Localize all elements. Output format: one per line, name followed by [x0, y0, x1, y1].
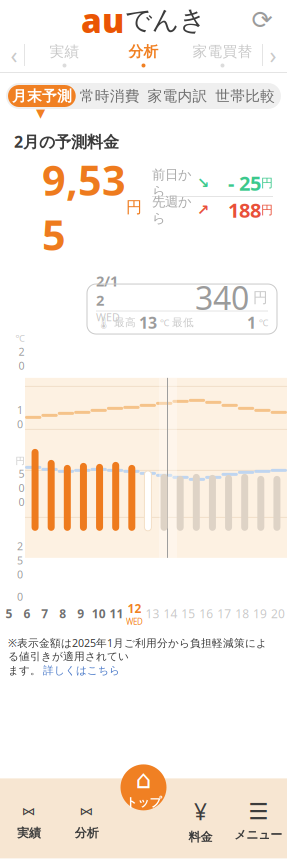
staticText: 14	[163, 606, 177, 622]
staticText: 13	[139, 312, 157, 333]
staticText: ↘	[192, 175, 209, 191]
staticText: WED	[96, 310, 120, 324]
staticText: 🌡	[96, 316, 111, 329]
staticText: 家電買替	[192, 42, 252, 60]
staticText: 0	[17, 589, 23, 604]
staticText: ‹	[10, 40, 17, 70]
staticText: 円	[126, 197, 142, 217]
button[interactable]: 詳しくはこちら	[43, 664, 120, 677]
staticText: 円	[15, 455, 24, 467]
staticText: 8	[59, 606, 66, 622]
staticText: 先週から	[152, 194, 192, 226]
staticText: 円	[249, 288, 268, 306]
button[interactable]: 世帯比較	[211, 85, 279, 107]
staticText: 12	[127, 600, 141, 616]
button[interactable]: 家電買替	[183, 38, 262, 72]
staticText: ⑅	[22, 800, 36, 823]
staticText: 500	[18, 466, 24, 509]
button[interactable]: ⑅	[0, 794, 58, 846]
staticText: - 25	[228, 170, 261, 196]
staticText: ⟳	[251, 6, 272, 34]
staticText: トップ	[125, 795, 161, 810]
staticText: 250	[17, 539, 23, 581]
staticText: 最低	[172, 316, 194, 329]
button[interactable]: 前へ	[4, 38, 24, 72]
button[interactable]: 再読み込み	[245, 3, 279, 37]
staticText: 188	[228, 197, 261, 223]
staticText: 11	[110, 606, 124, 622]
staticText: 実績	[17, 826, 41, 840]
staticText: 10	[17, 403, 23, 431]
staticText: ます。	[8, 664, 41, 677]
button[interactable]: ¥	[171, 794, 229, 846]
staticText: ※表示金額は2025年1月ご利用分から負担軽減策による値引きが適用されてい	[8, 636, 267, 663]
staticText: ▼	[36, 106, 45, 120]
staticText: ℃	[259, 316, 268, 329]
staticText: ⑅	[80, 800, 94, 823]
staticText: ℃	[15, 332, 24, 344]
staticText: 340	[195, 276, 249, 319]
staticText: 20	[271, 606, 285, 622]
staticText: 10	[92, 606, 106, 622]
button[interactable]: 月末予測	[8, 85, 76, 107]
staticText: 2/12	[96, 271, 118, 310]
staticText: 世帯比較	[215, 87, 275, 105]
button[interactable]: 実績	[25, 38, 104, 72]
staticText: 17	[217, 606, 231, 622]
staticText: 13	[145, 606, 159, 622]
button[interactable]: 家電内訳	[143, 85, 211, 107]
staticText: ⌂	[135, 765, 151, 794]
staticText: 2月の予測料金	[14, 131, 119, 152]
button[interactable]: 分析	[104, 38, 183, 72]
staticText: 9	[77, 606, 84, 622]
staticText: ›	[269, 40, 276, 70]
staticText: 19	[253, 606, 267, 622]
staticText: 16	[199, 606, 213, 622]
staticText: ℃	[160, 316, 169, 329]
staticText: メニュー	[234, 827, 282, 842]
staticText: ↗	[192, 202, 209, 218]
staticText: 月末予測	[12, 87, 72, 105]
button[interactable]: ☰	[229, 794, 287, 846]
staticText: ☰	[248, 799, 268, 824]
staticText: 6	[23, 606, 30, 622]
staticText: 9,535	[42, 152, 126, 262]
staticText: 前日から	[152, 167, 192, 199]
staticText: 実績	[49, 42, 79, 60]
button[interactable]: ⑅	[58, 794, 116, 846]
staticText: au	[81, 0, 124, 42]
staticText: 分析	[128, 42, 158, 60]
staticText: 円	[261, 176, 273, 190]
staticText: 20	[18, 344, 24, 373]
staticText: でんき	[125, 4, 206, 36]
button[interactable]: 次へ	[263, 38, 283, 72]
button[interactable]: ⌂	[120, 764, 166, 810]
staticText: 料金	[188, 830, 212, 844]
button[interactable]: 常時消費	[76, 85, 144, 107]
staticText: ¥	[194, 796, 207, 827]
staticText: 分析	[75, 826, 99, 840]
staticText: 最高	[114, 316, 136, 329]
staticText: 15	[181, 606, 195, 622]
staticText: 7	[41, 606, 48, 622]
staticText: 円	[261, 203, 273, 217]
staticText: 常時消費	[80, 87, 140, 105]
staticText: WED	[126, 616, 143, 627]
staticText: 詳しくはこちら	[43, 664, 120, 677]
staticText: 1	[247, 312, 256, 333]
staticText: 5	[5, 606, 12, 622]
staticText: 18	[235, 606, 249, 622]
staticText: 家電内訳	[147, 87, 207, 105]
